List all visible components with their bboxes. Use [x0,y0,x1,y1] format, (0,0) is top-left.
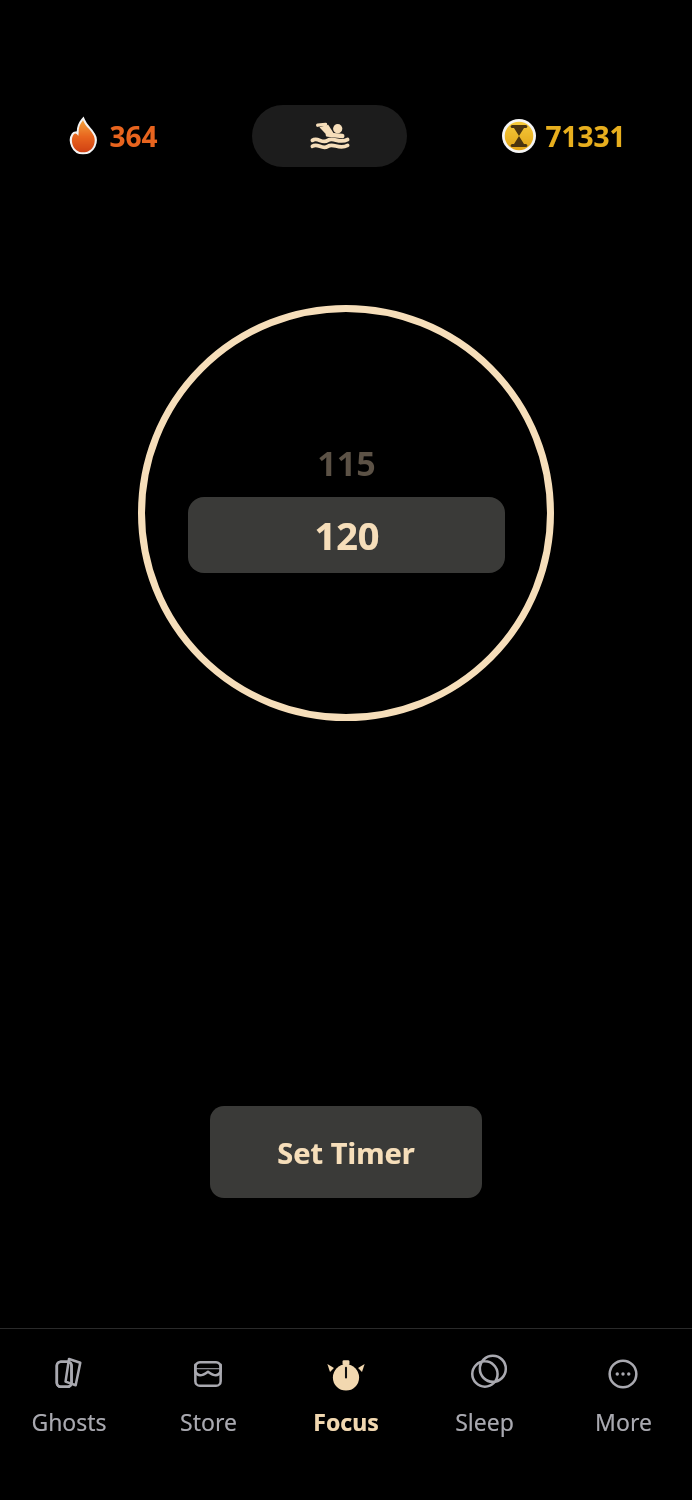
staticText: 71331 [545,117,626,155]
staticText: Store [180,1406,237,1437]
button[interactable]: Swimming activity [252,105,407,167]
staticText: 115 [317,440,376,486]
button[interactable]: Set Timer [210,1106,482,1198]
staticText: Sleep [455,1406,514,1437]
staticText: Ghosts [31,1406,107,1437]
staticText: 120 [314,509,380,561]
button[interactable]: Focus [277,1329,415,1437]
button[interactable]: 364 [62,113,162,159]
button[interactable]: 71331 [498,113,630,159]
button[interactable]: More [554,1329,692,1437]
staticText: Focus [313,1406,379,1437]
button[interactable]: Ghosts [0,1329,138,1437]
button[interactable]: Sleep [415,1329,553,1437]
button[interactable]: 120 [188,497,505,573]
button[interactable]: Store [139,1329,277,1437]
staticText: Set Timer [277,1133,415,1172]
staticText: 364 [109,117,158,155]
staticText: More [595,1406,652,1437]
